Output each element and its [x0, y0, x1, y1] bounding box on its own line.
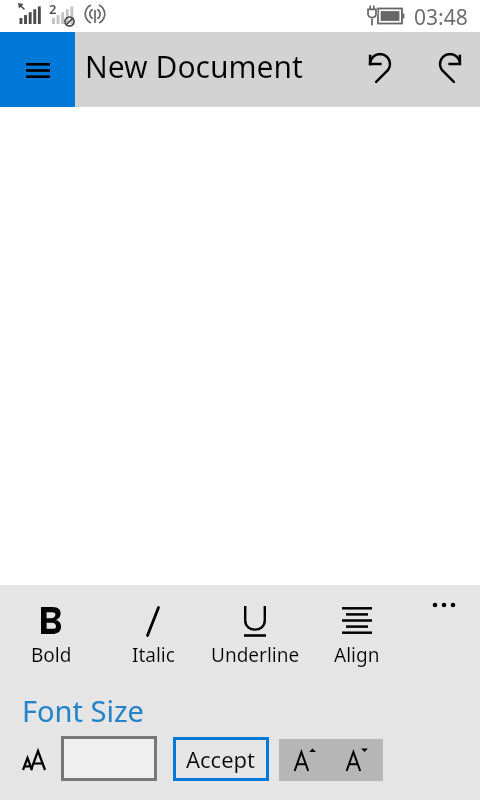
button[interactable]: Undo: [348, 39, 408, 99]
button[interactable]: Underline: [204, 585, 306, 677]
button[interactable]: Menu: [0, 32, 75, 107]
button[interactable]: More options: [414, 585, 474, 625]
staticText: Italic: [132, 642, 175, 668]
staticText: 2: [49, 0, 57, 18]
button[interactable]: Align: [306, 585, 408, 677]
button[interactable]: Increase font size: [279, 739, 331, 781]
staticText: Accept: [186, 744, 256, 774]
staticText: Underline: [211, 642, 300, 668]
staticText: Bold: [31, 642, 72, 668]
button[interactable]: Redo: [422, 39, 480, 99]
button[interactable]: Accept: [173, 737, 269, 781]
staticText: Font Size: [22, 691, 144, 730]
staticText: 03:48: [414, 3, 468, 32]
staticText: New Document: [85, 46, 303, 87]
button[interactable]: Decrease font size: [331, 739, 383, 781]
staticText: Align: [334, 642, 380, 668]
button[interactable]: Bold: [0, 585, 102, 677]
button[interactable]: Italic: [102, 585, 204, 677]
button[interactable]: Font size input: [61, 736, 157, 781]
